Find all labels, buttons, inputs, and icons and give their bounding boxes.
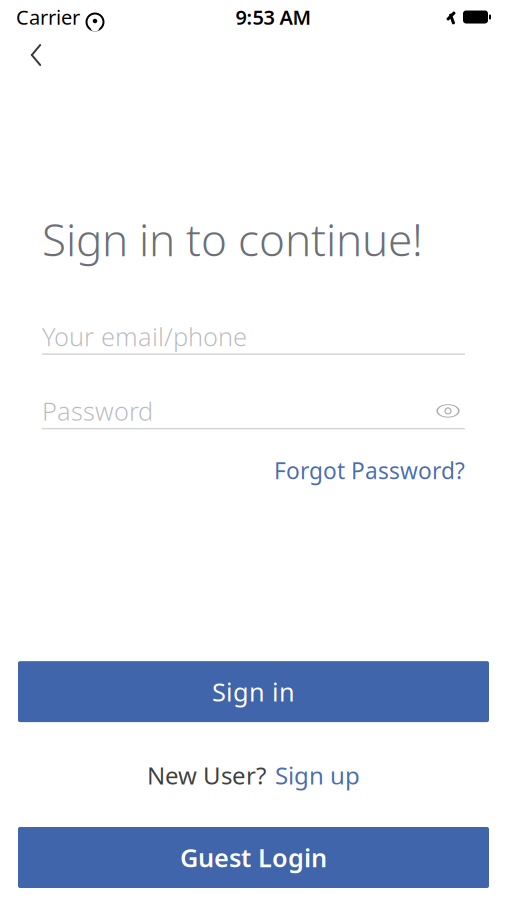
staticText: Your email/phone [42,320,247,353]
button[interactable]: Guest Login [18,827,489,888]
button[interactable]: Sign up [275,755,360,795]
staticText: Carrier [16,4,80,30]
button[interactable]: Back [13,32,59,78]
staticText: Password [42,394,153,428]
staticText: 9:53 AM [235,4,311,30]
button[interactable]: Show password [431,396,465,426]
staticText: Guest Login [180,841,327,874]
staticText: Sign in [212,675,295,708]
staticText: New User? [147,759,266,791]
staticText: Forgot Password? [274,455,465,485]
button[interactable]: Forgot Password? [274,451,465,489]
button[interactable]: Sign in [18,661,489,722]
staticText: Sign in to continue! [42,210,423,268]
staticText: Sign up [275,759,360,791]
